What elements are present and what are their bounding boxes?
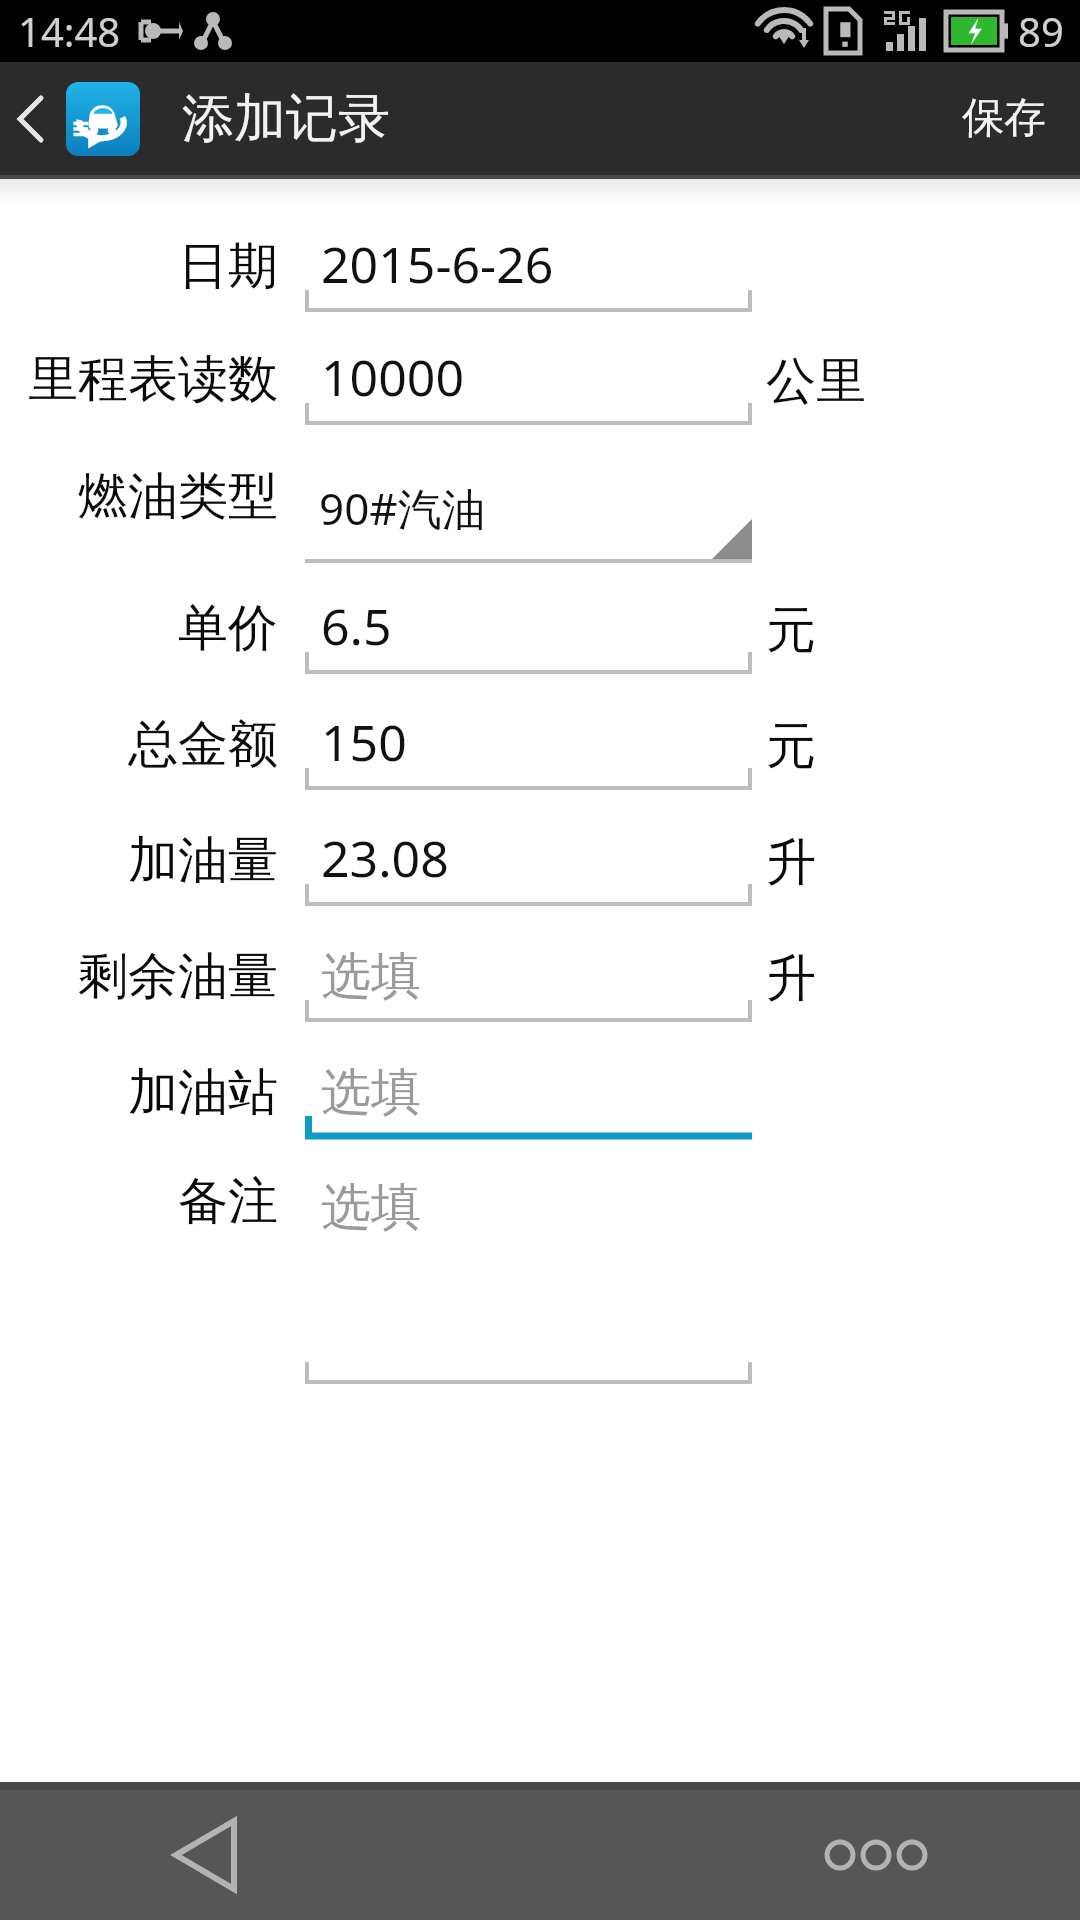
staticText: 升 — [766, 831, 816, 894]
staticText: 元 — [766, 599, 816, 662]
button[interactable]: 备注 — [0, 1154, 1080, 1404]
staticText: 公里 — [766, 350, 866, 413]
staticText: 燃油类型 — [78, 465, 278, 528]
staticText: 剩余油量 — [78, 945, 278, 1008]
button[interactable]: 保存 — [928, 62, 1080, 175]
staticText: 2015-6-26 — [321, 230, 554, 298]
staticText: 元 — [766, 715, 816, 778]
button[interactable]: 加油量 — [0, 806, 1080, 922]
staticText: 加油站 — [128, 1061, 278, 1124]
staticText: 23.08 — [321, 824, 449, 892]
staticText: 添加记录 — [182, 86, 390, 152]
staticText: 单价 — [178, 597, 278, 660]
button[interactable]: 燃油类型 — [0, 441, 1080, 574]
button[interactable]: 里程表读数 — [0, 328, 1080, 441]
staticText: 里程表读数 — [28, 348, 278, 411]
button[interactable]: Menu — [800, 1800, 960, 1910]
staticText: 加油量 — [128, 829, 278, 892]
button[interactable]: 日期 — [0, 215, 1080, 328]
staticText: 选填 — [321, 1061, 421, 1124]
button[interactable]: 总金额 — [0, 690, 1080, 806]
staticText: 14:48 — [18, 4, 121, 58]
staticText: 选填 — [321, 945, 421, 1008]
staticText: 保存 — [962, 92, 1046, 145]
button[interactable]: Back — [150, 1800, 260, 1910]
staticText: 备注 — [178, 1170, 278, 1233]
staticText: 选填 — [321, 1176, 421, 1239]
button[interactable]: Back — [0, 62, 60, 175]
button[interactable]: 加油站 — [0, 1038, 1080, 1154]
staticText: 90#汽油 — [319, 478, 486, 538]
button[interactable]: 单价 — [0, 574, 1080, 690]
staticText: 89 — [1018, 4, 1064, 58]
button[interactable]: App icon — [66, 82, 140, 156]
staticText: 150 — [321, 708, 407, 776]
staticText: 6.5 — [321, 592, 392, 660]
staticText: 升 — [766, 947, 816, 1010]
button[interactable]: 剩余油量 — [0, 922, 1080, 1038]
staticText: 10000 — [321, 343, 464, 411]
staticText: 日期 — [178, 235, 278, 298]
staticText: 总金额 — [128, 713, 278, 776]
